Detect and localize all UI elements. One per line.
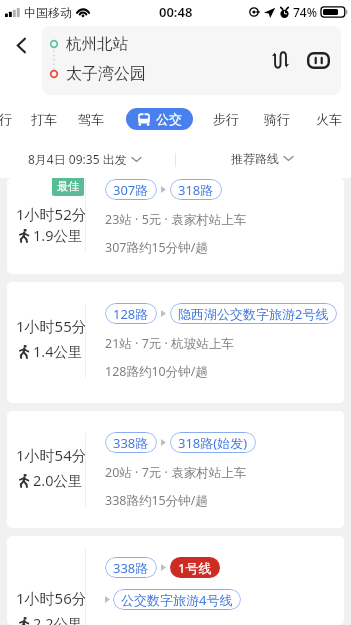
button[interactable]: 步行 — [203, 99, 249, 139]
button[interactable]: 火车 — [306, 99, 351, 139]
staticText: 推荐路线 — [231, 151, 279, 166]
staticText: 338路约15分钟/趟 — [105, 492, 208, 509]
button[interactable]: 公交 — [126, 108, 193, 130]
button[interactable]: 最佳 — [7, 178, 344, 274]
staticText: 杭州北站 — [66, 34, 128, 54]
staticText: 128路 — [113, 305, 149, 323]
staticText: 1.9公里 — [33, 225, 83, 245]
staticText: 338路 — [113, 559, 149, 577]
button[interactable]: Map view — [300, 42, 336, 78]
staticText: 火车 — [316, 111, 342, 127]
staticText: 太子湾公园 — [66, 64, 146, 84]
staticText: 23站 · 5元 · 袁家村站上车 — [105, 211, 247, 228]
staticText: 318路 — [178, 181, 214, 199]
staticText: 行 — [0, 111, 12, 127]
staticText: 1小时54分 — [16, 445, 87, 465]
staticText: 2.2公里 — [33, 613, 83, 625]
staticText: 1小时55分 — [16, 316, 87, 336]
button[interactable]: 1小时56分 — [7, 536, 344, 625]
staticText: 1.4公里 — [33, 341, 83, 361]
staticText: 318路(始发) — [178, 434, 248, 452]
button[interactable]: 8月4日 09:35 出发 — [28, 149, 141, 169]
staticText: 307路约15分钟/趟 — [105, 239, 208, 256]
staticText: 307路 — [113, 181, 149, 199]
staticText: 8月4日 09:35 出发 — [28, 151, 127, 167]
button[interactable]: 骑行 — [254, 99, 300, 139]
staticText: 2.0公里 — [33, 470, 83, 490]
staticText: 128路约10分钟/趟 — [105, 363, 208, 380]
button[interactable]: Back — [0, 24, 42, 66]
button[interactable]: 行 — [0, 99, 20, 139]
button[interactable]: 1小时55分 — [7, 282, 344, 403]
button[interactable]: 太子湾公园 — [50, 64, 146, 84]
staticText: 骑行 — [264, 111, 290, 127]
button[interactable]: 1小时54分 — [7, 411, 344, 528]
staticText: 00:48 — [159, 3, 193, 21]
staticText: 中国移动 — [24, 5, 72, 20]
staticText: 20站 · 7元 · 袁家村站上车 — [105, 464, 247, 481]
button[interactable]: 推荐路线 — [231, 149, 293, 168]
staticText: 打车 — [31, 111, 57, 127]
staticText: 步行 — [213, 111, 239, 127]
staticText: 1小时56分 — [16, 588, 87, 608]
staticText: 驾车 — [78, 111, 104, 127]
staticText: 隐西湖公交数字旅游2号线 — [178, 305, 329, 323]
staticText: 1小时52分 — [16, 204, 87, 224]
staticText: 21站 · 7元 · 杭玻站上车 — [105, 335, 234, 352]
staticText: 1号线 — [178, 559, 212, 577]
button[interactable]: 驾车 — [68, 99, 114, 139]
staticText: 公交 — [156, 111, 182, 127]
button[interactable]: 杭州北站 — [50, 34, 128, 54]
staticText: 最佳 — [57, 179, 79, 193]
button[interactable]: 打车 — [21, 99, 67, 139]
button[interactable]: Swap origin and destination — [261, 42, 297, 78]
staticText: 74% — [293, 4, 317, 20]
staticText: 338路 — [113, 434, 149, 452]
staticText: 公交数字旅游4号线 — [121, 591, 233, 609]
